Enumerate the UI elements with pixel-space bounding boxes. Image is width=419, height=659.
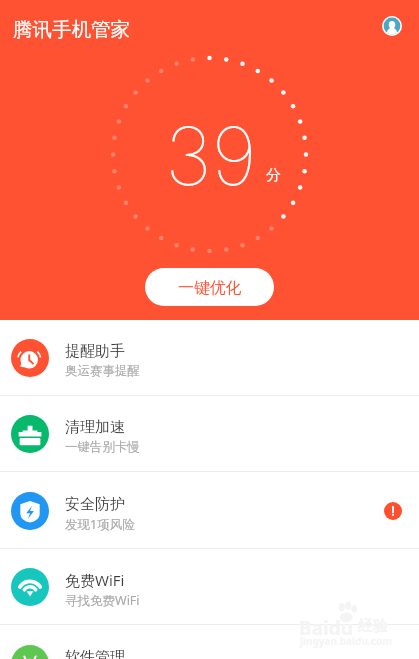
staticText: 奥运赛事提醒 (65, 363, 140, 379)
staticText: 经验 (358, 617, 388, 636)
staticText: 安全防护 (65, 495, 125, 514)
staticText: 分 (266, 166, 281, 185)
button[interactable]: 软件管理 (0, 626, 419, 659)
button[interactable]: 提醒助手 (0, 320, 419, 396)
staticText: 软件管理 (65, 648, 125, 659)
staticText: 清理加速 (65, 418, 125, 437)
button[interactable]: 清理加速 (0, 396, 419, 472)
staticText: 一键优化 (178, 278, 242, 298)
staticText: jingyan.baidu.com (300, 634, 392, 648)
staticText: 免费WiFi (65, 570, 125, 590)
button[interactable]: 安全防护 (0, 473, 419, 549)
button[interactable]: 免费WiFi (0, 549, 419, 625)
staticText: 寻找免费WiFi (65, 592, 140, 609)
staticText: 腾讯手机管家 (13, 17, 130, 42)
button[interactable]: 一键优化 (145, 268, 274, 306)
staticText: 发现1项风险 (65, 516, 135, 533)
staticText: 提醒助手 (65, 342, 125, 361)
staticText: 39 (165, 107, 257, 204)
staticText: Baidu (299, 615, 354, 641)
button[interactable]: Account (382, 16, 402, 36)
staticText: 一键告别卡慢 (65, 439, 140, 455)
